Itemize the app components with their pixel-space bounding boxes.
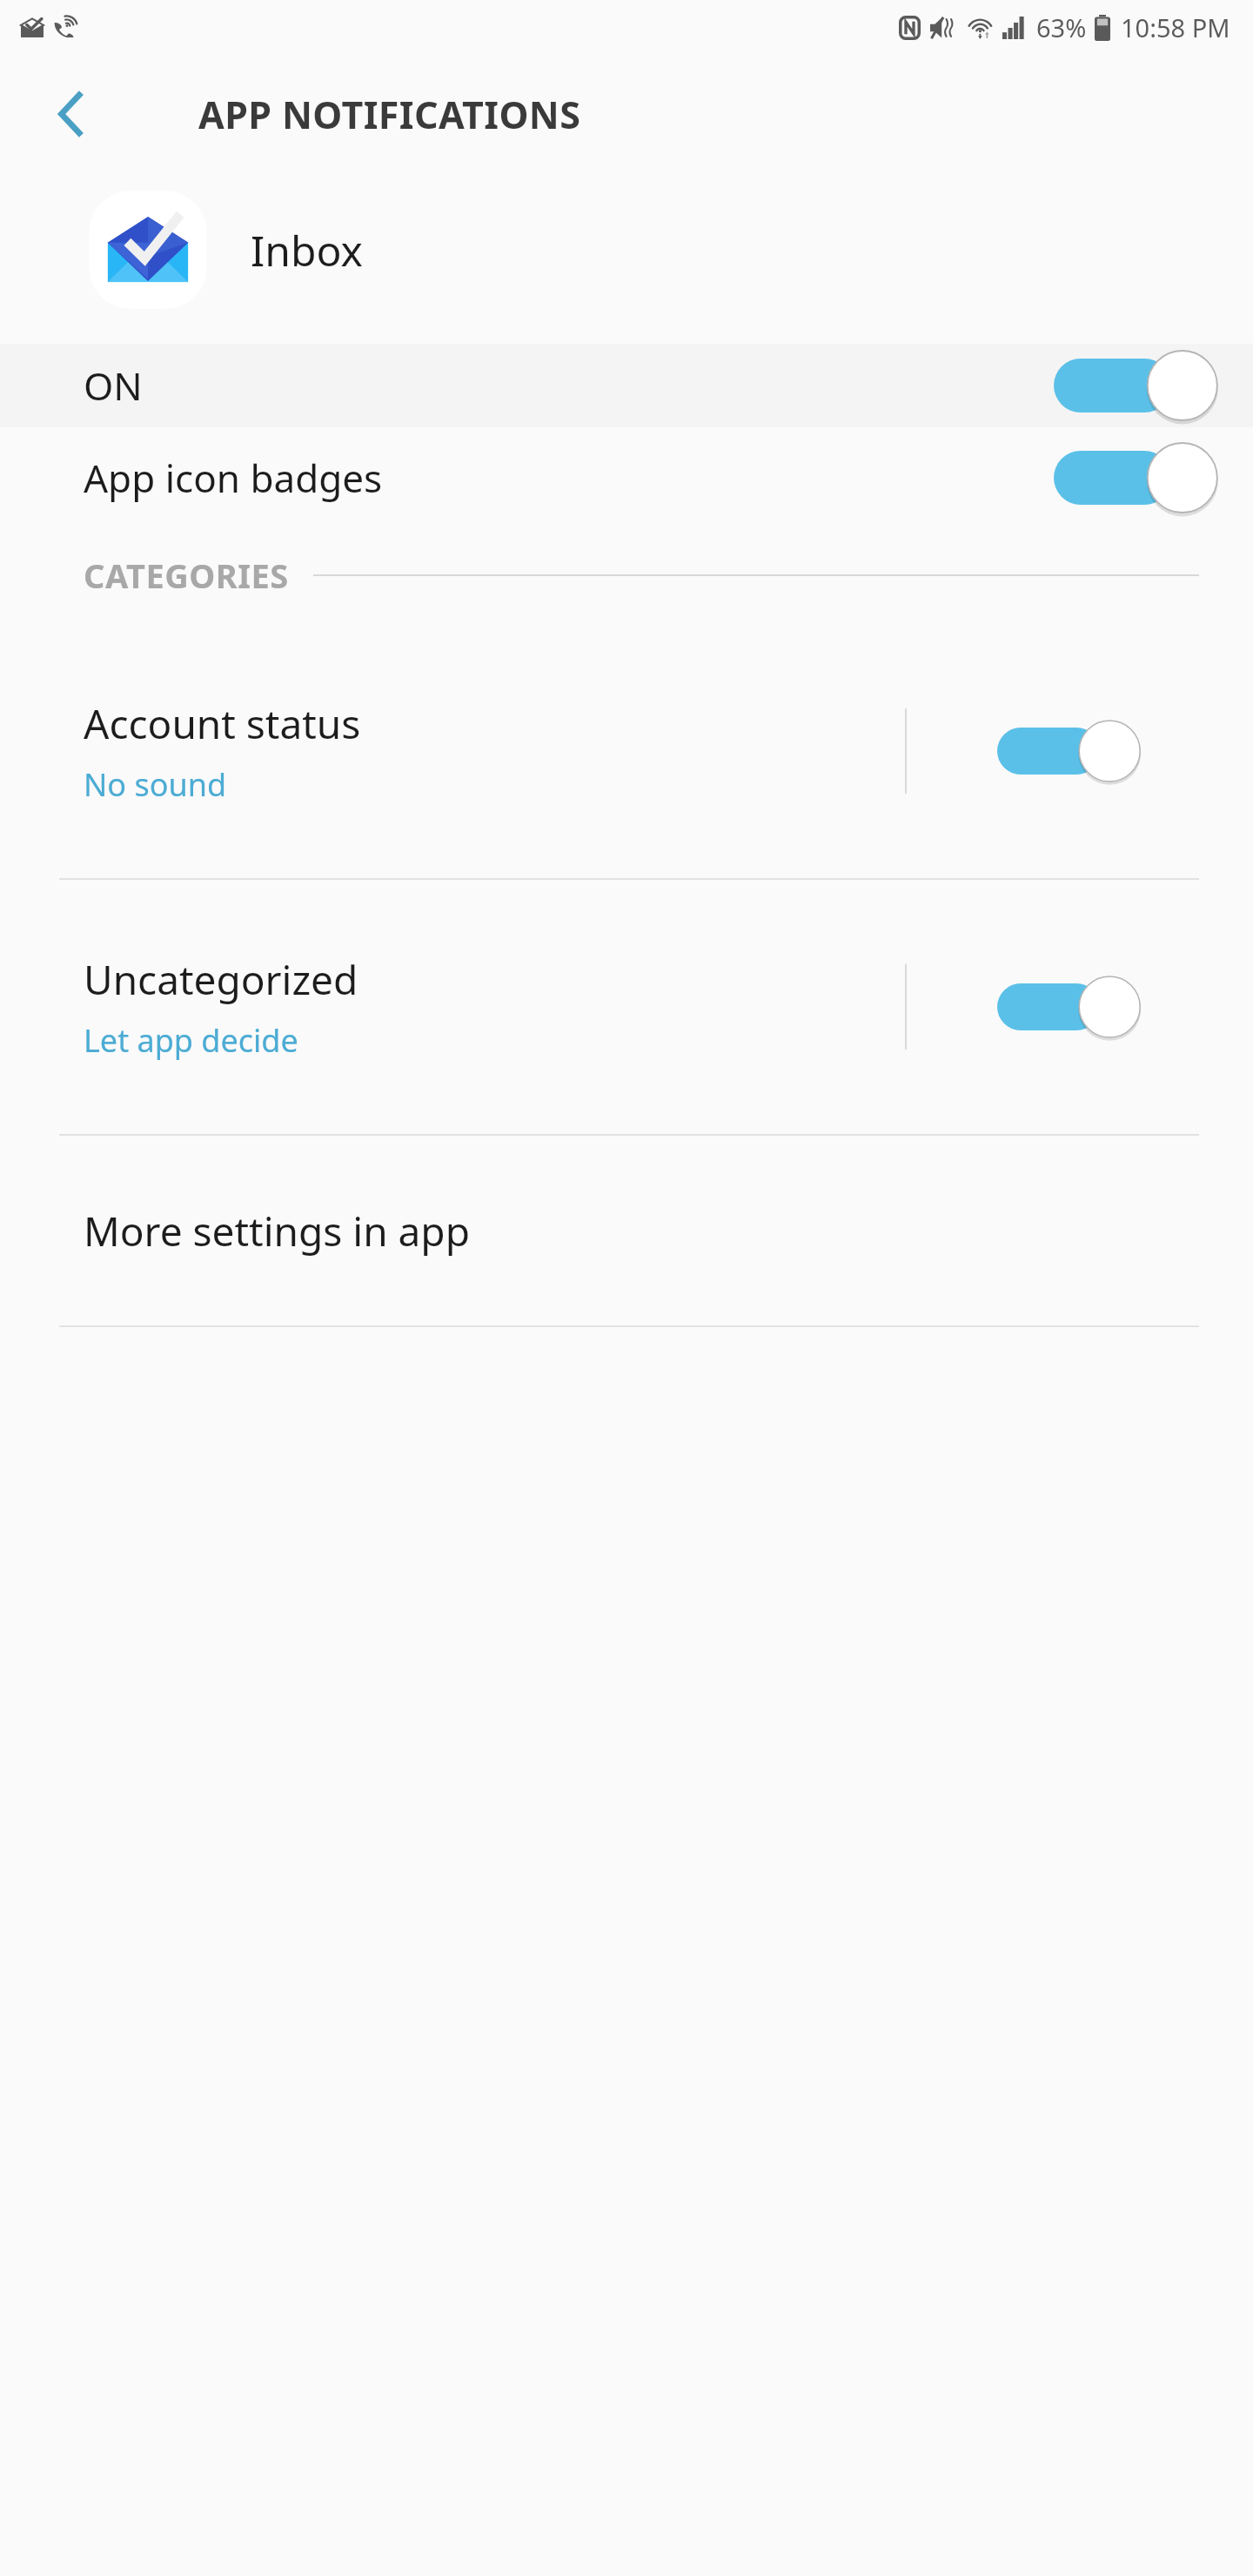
button[interactable]: App icon badges	[0, 434, 1253, 521]
staticText: 10:58 PM	[1121, 10, 1230, 44]
button[interactable]: Inbox	[0, 173, 1253, 326]
staticText: More settings in app	[84, 1204, 470, 1258]
button[interactable]: Toggle	[997, 973, 1128, 1041]
staticText: Let app decide	[84, 1019, 298, 1062]
button[interactable]: Toggle	[997, 717, 1128, 785]
button[interactable]: Back	[44, 86, 99, 142]
staticText: No sound	[84, 763, 227, 806]
staticText: Account status	[84, 696, 361, 751]
staticText: App icon badges	[84, 452, 383, 504]
button[interactable]: ON	[0, 344, 1253, 427]
button[interactable]: Toggle	[1054, 347, 1203, 424]
button[interactable]: More settings in app	[0, 1136, 1253, 1325]
staticText: CATEGORIES	[84, 553, 289, 598]
staticText: APP NOTIFICATIONS	[198, 89, 581, 140]
button[interactable]: Account status	[0, 624, 1253, 878]
staticText: Inbox	[251, 222, 363, 278]
staticText: Uncategorized	[84, 952, 358, 1007]
button[interactable]: Uncategorized	[0, 880, 1253, 1134]
staticText: ON	[84, 359, 143, 412]
button[interactable]: Toggle	[1054, 439, 1203, 516]
staticText: 63%	[1036, 10, 1087, 44]
